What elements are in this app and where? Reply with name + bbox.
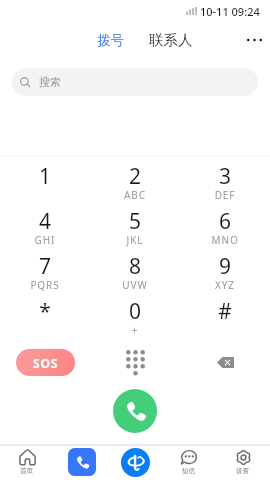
staticText: ABC	[90, 188, 180, 202]
staticText: 5	[90, 207, 180, 236]
button[interactable]: Backspace	[180, 345, 270, 379]
button[interactable]: 6	[180, 201, 270, 246]
staticText: 首页	[20, 467, 34, 475]
button[interactable]: 1	[0, 156, 90, 201]
staticText: #	[180, 297, 270, 326]
staticText: 9	[180, 252, 270, 281]
button[interactable]: 4	[0, 201, 90, 246]
staticText: UVW	[90, 278, 180, 292]
button[interactable]: Dialpad	[90, 345, 180, 379]
button[interactable]: Home	[0, 448, 54, 480]
button[interactable]: 搜索	[12, 68, 258, 96]
button[interactable]: 0	[90, 291, 180, 336]
button[interactable]: SOS	[16, 349, 75, 376]
button[interactable]: *	[0, 291, 90, 336]
staticText: JKL	[90, 233, 180, 247]
staticText: PQRS	[0, 278, 90, 292]
staticText: 7	[0, 252, 90, 281]
staticText: 3	[180, 162, 270, 191]
staticText: 拨号	[97, 32, 124, 49]
button[interactable]: 2	[90, 156, 180, 201]
staticText: 8	[90, 252, 180, 281]
staticText: +	[90, 323, 180, 337]
staticText: 设置	[236, 467, 250, 475]
staticText: 1	[0, 162, 90, 191]
button[interactable]: 8	[90, 246, 180, 291]
button[interactable]: 联系人	[141, 26, 201, 54]
button[interactable]: Call	[113, 389, 157, 433]
staticText: MNO	[180, 233, 270, 247]
staticText: XYZ	[180, 278, 270, 292]
button[interactable]: Messages	[162, 448, 216, 480]
staticText: *	[0, 297, 90, 326]
staticText: DEF	[180, 188, 270, 202]
button[interactable]: Dialer	[54, 448, 108, 480]
button[interactable]: Settings	[216, 448, 270, 480]
staticText: 搜索	[39, 75, 61, 89]
staticText: 短信	[182, 467, 196, 475]
button[interactable]: 拨号	[89, 27, 132, 54]
button[interactable]: #	[180, 291, 270, 336]
staticText: SOS	[33, 355, 59, 371]
button[interactable]: 7	[0, 246, 90, 291]
button[interactable]: 9	[180, 246, 270, 291]
button[interactable]: More options	[243, 29, 265, 51]
button[interactable]: 3	[180, 156, 270, 201]
staticText: 4	[0, 207, 90, 236]
button[interactable]: China Telecom	[108, 448, 162, 480]
staticText: 2	[90, 162, 180, 191]
staticText: 联系人	[149, 31, 193, 49]
button[interactable]: 5	[90, 201, 180, 246]
staticText: 10-11 09:24	[200, 4, 260, 19]
staticText: 0	[90, 297, 180, 326]
staticText: 6	[180, 207, 270, 236]
staticText: GHI	[0, 233, 90, 247]
